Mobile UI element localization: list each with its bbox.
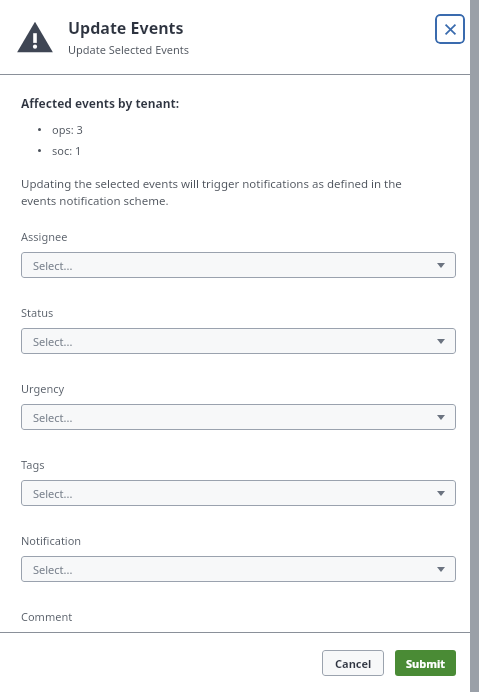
staticText: Update Selected Events <box>68 42 190 57</box>
staticText: Urgency <box>21 381 65 396</box>
button[interactable]: Select... <box>21 556 456 582</box>
staticText: Select... <box>33 334 437 349</box>
staticText: Select... <box>33 258 437 273</box>
staticText: Select... <box>33 410 437 425</box>
staticText: Affected events by tenant: <box>21 95 180 111</box>
staticText: Select... <box>33 562 437 577</box>
staticText: Submit <box>406 656 445 671</box>
staticText: Update Events <box>68 17 184 39</box>
staticText: ops: 3 <box>52 122 83 137</box>
staticText: Select... <box>33 486 437 501</box>
button[interactable]: Select... <box>21 252 456 278</box>
staticText: soc: 1 <box>52 143 82 158</box>
button[interactable]: Select... <box>21 328 456 354</box>
staticText: Comment <box>21 609 73 624</box>
staticText: Updating the selected events will trigge… <box>21 176 419 209</box>
staticText: Cancel <box>335 656 372 671</box>
button[interactable]: Select... <box>21 404 456 430</box>
button[interactable]: Submit <box>395 650 456 676</box>
staticText: Tags <box>21 457 45 472</box>
button[interactable]: Close <box>435 14 465 44</box>
staticText: Assignee <box>21 229 68 244</box>
button[interactable]: Cancel <box>322 650 384 676</box>
staticText: Notification <box>21 533 82 548</box>
staticText: Status <box>21 305 54 320</box>
button[interactable]: Select... <box>21 480 456 506</box>
